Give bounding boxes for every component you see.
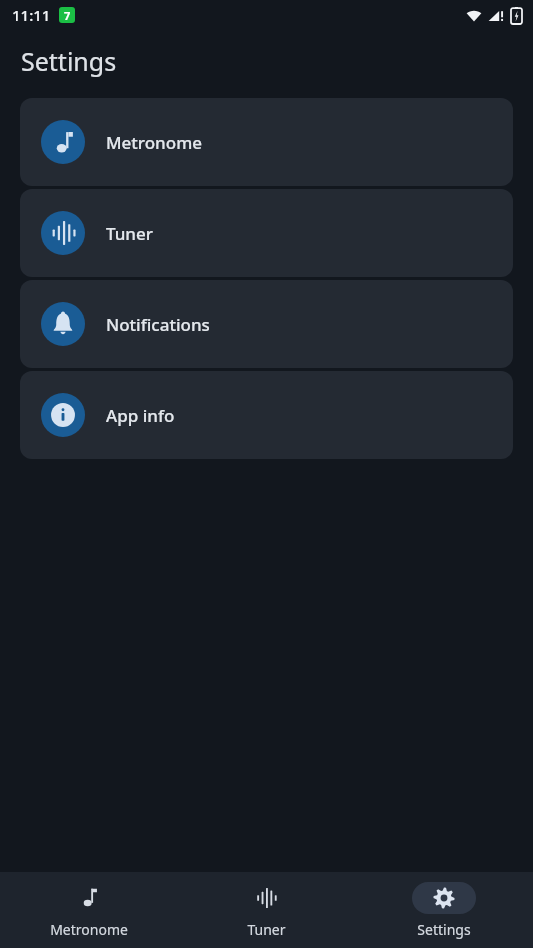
staticText: Tuner <box>247 920 286 939</box>
button[interactable]: Settings <box>355 872 533 948</box>
staticText: 7 <box>64 8 71 23</box>
staticText: Metronome <box>50 920 128 939</box>
button[interactable]: Notifications <box>20 280 513 368</box>
staticText: 11:11 <box>12 5 51 25</box>
staticText: Notifications <box>106 313 210 336</box>
staticText: App info <box>106 404 175 427</box>
button[interactable]: App info <box>20 371 513 459</box>
staticText: Settings <box>21 44 117 78</box>
button[interactable]: Tuner <box>20 189 513 277</box>
button[interactable]: Metronome <box>20 98 513 186</box>
button[interactable]: Tuner <box>177 872 355 948</box>
staticText: Tuner <box>106 222 153 245</box>
staticText: Metronome <box>106 131 203 154</box>
button[interactable]: Metronome <box>0 872 177 948</box>
staticText: Settings <box>417 920 471 939</box>
